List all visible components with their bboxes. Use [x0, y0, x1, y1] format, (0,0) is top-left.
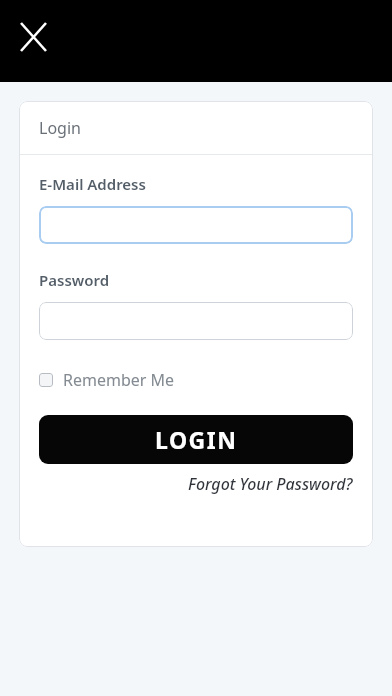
- button[interactable]: LOGIN: [39, 415, 353, 464]
- button[interactable]: [12, 15, 54, 59]
- staticText: Remember Me: [63, 369, 175, 391]
- button[interactable]: [39, 302, 353, 340]
- staticText: E-Mail Address: [39, 174, 146, 194]
- staticText: Password: [39, 270, 110, 290]
- staticText: LOGIN: [155, 424, 238, 455]
- staticText: Login: [39, 117, 81, 139]
- button[interactable]: Forgot Your Password?: [188, 473, 353, 495]
- button[interactable]: Remember Me: [39, 369, 175, 391]
- button[interactable]: [39, 206, 353, 244]
